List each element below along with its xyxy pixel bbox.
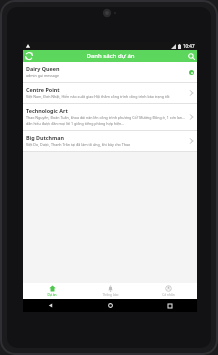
button[interactable]: Centre Point (23, 83, 197, 103)
staticText: 10:47 (183, 43, 195, 49)
button[interactable]: Home (105, 300, 116, 311)
button[interactable]: Cá nhân (139, 283, 197, 299)
button[interactable]: Recent apps (164, 300, 175, 311)
button[interactable]: Big Dutchman (23, 131, 197, 151)
staticText: Thao Nguyên, Đoàn Tuấn, khoa dải nàn lên… (26, 115, 185, 120)
button[interactable]: Technologic Art (23, 104, 197, 130)
staticText: Thông báo (102, 293, 119, 297)
button[interactable]: Refresh (23, 50, 35, 62)
button[interactable]: Thông báo (81, 283, 139, 299)
staticText: Dự án (47, 293, 57, 297)
staticText: Dairy Queen (26, 65, 60, 72)
staticText: dẫn hiểu được đàn mọi lời 1 giống tiếng … (26, 121, 125, 126)
staticText: Việt Do, Dược, Thanh Trần tại đã làm tô … (26, 142, 131, 147)
staticText: admin gui message (26, 73, 60, 78)
button[interactable]: Search (185, 50, 197, 62)
staticText: Centre Point (26, 86, 60, 93)
button[interactable]: Back (45, 300, 56, 311)
staticText: Technologic Art (26, 107, 68, 114)
staticText: Danh sách dự án (86, 52, 135, 60)
staticText: Cá nhân (162, 293, 175, 297)
button[interactable]: Dự án (23, 283, 81, 299)
staticText: Việt Nam, Đơn Nhật, Hiển nào xuất giao H… (26, 94, 170, 99)
staticText: Big Dutchman (26, 134, 65, 141)
button[interactable]: Dairy Queen (23, 62, 197, 82)
